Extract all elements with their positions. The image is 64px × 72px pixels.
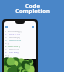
staticText: 3 println(x): [5, 35, 20, 38]
staticText: 6 class Foo {: [5, 44, 20, 47]
button[interactable]: 1 fun main() {: [4, 21, 36, 72]
staticText: 9 }: [5, 53, 9, 56]
staticText: 4 return x*2: [5, 38, 22, 41]
staticText: 2 val x = 10: [5, 32, 20, 35]
staticText: 7 var y = 0: [5, 47, 19, 50]
staticText: 8 fun bar(): [5, 50, 20, 53]
staticText: 1 fun main() {: [5, 29, 22, 32]
staticText: Code: [25, 2, 40, 10]
staticText: 5 }: [5, 41, 9, 44]
staticText: Completion: [15, 7, 50, 15]
